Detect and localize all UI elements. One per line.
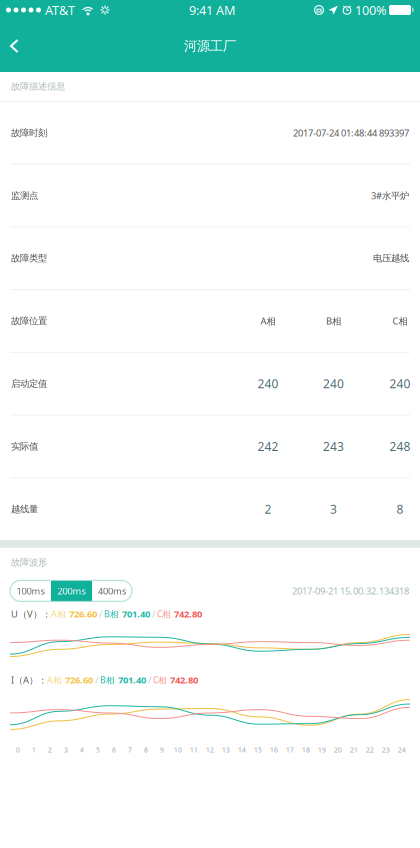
staticText: 726.60 <box>69 607 97 620</box>
staticText: 实际值 <box>11 440 38 452</box>
staticText: 7 <box>128 745 132 754</box>
staticText: 故障波形 <box>11 556 47 568</box>
staticText: 16 <box>270 745 278 754</box>
staticText: 240 <box>323 375 344 392</box>
staticText: B相 <box>100 674 118 686</box>
staticText: 742.80 <box>170 673 198 686</box>
staticText: 启动定值 <box>11 378 47 390</box>
staticText: 故障描述信息 <box>11 81 65 92</box>
staticText: B相 <box>104 608 122 620</box>
staticText: 200ms <box>57 584 85 597</box>
staticText: 240 <box>257 375 278 392</box>
staticText: / <box>97 607 104 620</box>
staticText: U（V）： <box>11 607 51 620</box>
staticText: 18 <box>302 745 310 754</box>
staticText: 9 <box>160 745 164 754</box>
staticText: 12 <box>206 745 214 754</box>
staticText: 21 <box>350 745 358 754</box>
staticText: 100% <box>355 1 387 19</box>
staticText: 3#水平炉 <box>371 189 409 202</box>
staticText: 4 <box>80 745 84 754</box>
staticText: 19 <box>318 745 326 754</box>
staticText: 701.40 <box>122 607 150 620</box>
staticText: 2017-07-24 01:48:44 893397 <box>293 126 409 139</box>
staticText: 10 <box>174 745 182 754</box>
staticText: / <box>93 673 100 686</box>
staticText: C相 <box>157 608 174 620</box>
staticText: 17 <box>286 745 294 754</box>
staticText: 726.60 <box>65 673 93 686</box>
staticText: 20 <box>334 745 342 754</box>
staticText: 故障位置 <box>11 315 47 327</box>
staticText: 故障时刻 <box>11 127 47 139</box>
staticText: 1 <box>32 745 36 754</box>
button[interactable]: Back <box>0 29 33 62</box>
staticText: 3 <box>330 501 337 517</box>
staticText: 2 <box>264 501 271 517</box>
staticText: 故障类型 <box>11 252 47 264</box>
staticText: 242 <box>257 438 278 454</box>
staticText: A相 <box>47 674 65 686</box>
staticText: 0 <box>16 745 20 754</box>
staticText: 5 <box>96 745 100 754</box>
staticText: 3 <box>64 745 68 754</box>
staticText: 6 <box>112 745 116 754</box>
staticText: 24 <box>398 745 406 754</box>
staticText: 15 <box>254 745 262 754</box>
staticText: 13 <box>222 745 230 754</box>
staticText: C相 <box>153 674 170 686</box>
staticText: 河源工厂 <box>184 38 236 54</box>
staticText: B相 <box>326 315 341 327</box>
staticText: I（A）： <box>11 673 47 686</box>
staticText: 越线量 <box>11 503 38 515</box>
button[interactable]: 400ms <box>92 580 132 601</box>
staticText: 电压越线 <box>373 252 409 264</box>
staticText: 9:41 AM <box>189 1 235 19</box>
staticText: A相 <box>260 315 275 327</box>
staticText: 2017-09-21 15.00.32.134318 <box>292 584 409 597</box>
staticText: 22 <box>366 745 374 754</box>
staticText: 11 <box>190 745 198 754</box>
staticText: 100ms <box>16 584 44 597</box>
staticText: 701.40 <box>118 673 146 686</box>
staticText: 8 <box>144 745 148 754</box>
staticText: 8 <box>396 501 403 517</box>
staticText: 400ms <box>98 584 126 597</box>
staticText: 243 <box>323 438 344 454</box>
staticText: 2 <box>48 745 52 754</box>
button[interactable]: 200ms <box>51 580 92 601</box>
staticText: / <box>146 673 153 686</box>
staticText: 742.80 <box>174 607 202 620</box>
button[interactable]: 100ms <box>10 580 51 601</box>
staticText: 248 <box>389 438 410 454</box>
staticText: 14 <box>238 745 246 754</box>
staticText: / <box>150 607 157 620</box>
staticText: AT&T <box>45 1 75 19</box>
staticText: 监测点 <box>11 190 38 201</box>
staticText: 23 <box>382 745 390 754</box>
staticText: 240 <box>389 375 410 392</box>
staticText: A相 <box>51 608 69 620</box>
staticText: C相 <box>392 315 407 327</box>
